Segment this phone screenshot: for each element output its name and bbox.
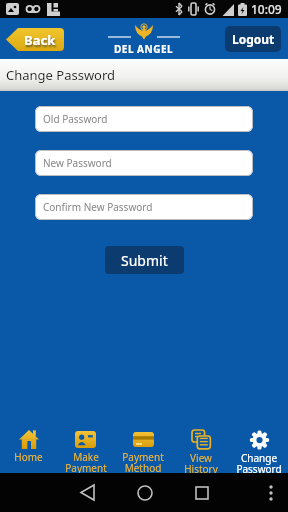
- staticText: Confirm New Password: [43, 200, 153, 214]
- button[interactable]: [67, 473, 107, 512]
- staticText: Back: [24, 31, 56, 49]
- button[interactable]: View History: [172, 425, 230, 473]
- staticText: Change Password: [236, 451, 282, 473]
- button[interactable]: Confirm New Password: [35, 194, 253, 220]
- staticText: Submit: [121, 251, 168, 270]
- staticText: Payment Method: [122, 450, 164, 473]
- staticText: 10:09: [251, 1, 282, 17]
- staticText: Change Password: [6, 66, 116, 84]
- button[interactable]: Make Payment: [57, 425, 114, 473]
- staticText: Logout: [232, 31, 275, 47]
- staticText: Home: [14, 450, 43, 464]
- button[interactable]: Payment Method: [114, 425, 172, 473]
- button[interactable]: Submit: [105, 246, 184, 274]
- button[interactable]: [124, 473, 165, 512]
- button[interactable]: [254, 473, 288, 512]
- button[interactable]: Home: [0, 425, 57, 473]
- staticText: DEL ANGEL: [114, 42, 174, 56]
- button[interactable]: Back: [6, 28, 64, 51]
- button[interactable]: [182, 473, 222, 512]
- staticText: View History: [184, 451, 218, 473]
- button[interactable]: Old Password: [35, 106, 253, 132]
- staticText: Make Payment: [65, 450, 107, 473]
- button[interactable]: New Password: [35, 150, 253, 176]
- staticText: Old Password: [43, 112, 108, 126]
- button[interactable]: Change Password: [230, 425, 288, 473]
- staticText: New Password: [43, 156, 112, 170]
- button[interactable]: Logout: [225, 26, 281, 52]
